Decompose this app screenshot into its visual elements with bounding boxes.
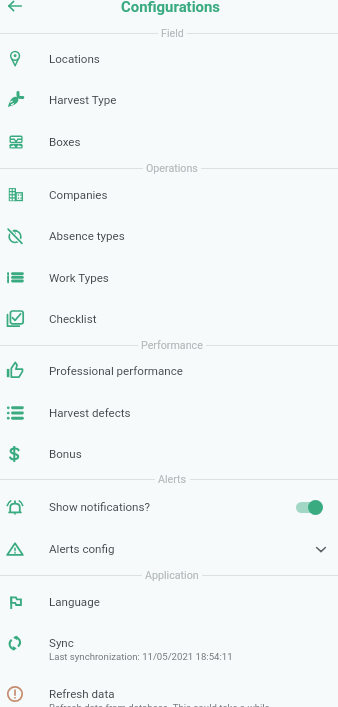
staticText: Alerts config [49,542,115,556]
button[interactable]: Boxes [0,121,338,162]
staticText: Show notifications? [49,500,150,514]
staticText: Absence types [49,229,125,243]
staticText: Professional performance [49,364,183,378]
button[interactable]: Sync [0,622,338,674]
staticText: Refresh data [49,687,115,701]
button[interactable]: Expand alerts config [312,540,330,558]
staticText: Checklist [49,312,97,326]
button[interactable]: Refresh data [0,673,338,707]
staticText: Alerts [158,473,187,485]
staticText: Work Types [49,271,109,285]
staticText: Boxes [49,135,81,149]
staticText: Sync [49,636,74,650]
staticText: Configurations [121,0,221,15]
button[interactable]: Show notifications toggle [293,498,329,516]
button[interactable]: Work Types [0,257,338,298]
staticText: Bonus [49,447,82,461]
button[interactable]: Harvest Type [0,79,338,120]
staticText: Language [49,595,100,609]
staticText: Harvest defects [49,406,131,420]
button[interactable]: Language [0,581,338,622]
staticText: Refresh data from database. This could t… [49,702,273,707]
button[interactable]: Alerts config [0,528,338,569]
staticText: Performance [141,339,203,351]
staticText: Last synchronization: 11/05/2021 18:54:1… [49,651,233,662]
button[interactable]: Bonus [0,433,338,474]
button[interactable]: Show notifications? [0,486,338,527]
button[interactable]: Absence types [0,215,338,256]
staticText: Field [161,27,184,39]
staticText: Operations [146,162,198,174]
staticText: Companies [49,188,108,202]
button[interactable]: Harvest defects [0,392,338,433]
button[interactable]: Checklist [0,298,338,339]
staticText: Application [145,569,199,581]
button[interactable]: Companies [0,174,338,215]
button[interactable]: Locations [0,38,338,79]
button[interactable]: Professional performance [0,350,338,391]
staticText: Locations [49,52,100,66]
staticText: Harvest Type [49,93,117,107]
button[interactable]: Back [5,0,25,16]
